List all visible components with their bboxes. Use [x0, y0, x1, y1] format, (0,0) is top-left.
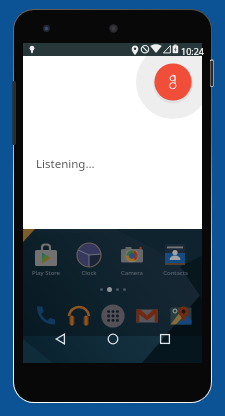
button[interactable]: Clock: [72, 242, 106, 277]
button[interactable]: Gmail: [134, 303, 160, 329]
button[interactable]: Apps: [100, 303, 126, 329]
button[interactable]: Music: [66, 303, 92, 329]
button[interactable]: Camera: [115, 242, 149, 277]
staticText: Play Store: [32, 269, 60, 277]
button[interactable]: Phone: [32, 303, 58, 329]
staticText: Clock: [81, 269, 97, 277]
button[interactable]: Recents: [153, 327, 177, 351]
button[interactable]: Home: [101, 327, 125, 351]
staticText: Camera: [121, 269, 143, 277]
button[interactable]: Maps: [168, 303, 194, 329]
button[interactable]: Back: [49, 327, 73, 351]
staticText: Contacts: [163, 269, 188, 277]
button[interactable]: Contacts: [158, 242, 192, 277]
button[interactable]: Listening…: [23, 56, 202, 229]
button[interactable]: Play Store: [29, 242, 63, 277]
staticText: Listening…: [36, 156, 95, 172]
staticText: 10:24: [181, 45, 205, 57]
